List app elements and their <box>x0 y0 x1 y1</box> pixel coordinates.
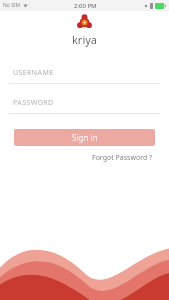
staticText: Sign in <box>72 132 98 143</box>
button[interactable]: Sign in <box>14 129 155 146</box>
staticText: No SIM <box>3 2 21 9</box>
staticText: PASSWORD <box>13 98 54 108</box>
button[interactable]: USERNAME <box>0 63 169 83</box>
staticText: 2:00 PM <box>74 2 97 10</box>
button[interactable]: PASSWORD <box>0 93 169 113</box>
other: Kriya logo <box>76 14 93 31</box>
button[interactable]: Forgot Password ? <box>90 151 155 165</box>
staticText: kriya <box>72 32 98 47</box>
staticText: USERNAME <box>13 68 54 78</box>
staticText: Forgot Password ? <box>92 153 153 163</box>
